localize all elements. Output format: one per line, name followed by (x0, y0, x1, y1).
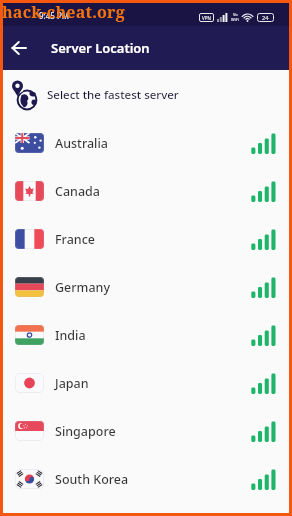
staticText: Australia (55, 135, 108, 152)
staticText: South Korea (55, 471, 129, 488)
staticText: Germany (55, 279, 110, 296)
button[interactable] (3, 26, 35, 70)
staticText: 24 (262, 14, 269, 21)
staticText: France (55, 231, 95, 248)
button[interactable]: India (3, 311, 289, 359)
staticText: Server Location (51, 39, 150, 57)
staticText: VPN (202, 15, 211, 21)
button[interactable]: Japan (3, 359, 289, 407)
button[interactable]: France (3, 215, 289, 263)
button[interactable]: Australia (3, 119, 289, 167)
staticText: Vo (233, 12, 238, 17)
staticText: Select the fastest server (47, 87, 179, 103)
staticText: Singapore (55, 423, 116, 440)
button[interactable]: South Korea (3, 455, 289, 503)
staticText: Japan (55, 375, 89, 392)
staticText: Canada (55, 183, 100, 200)
button[interactable]: Canada (3, 167, 289, 215)
staticText: hack-cheat.org (2, 1, 125, 23)
staticText: India (55, 327, 86, 344)
staticText: 9:45 PM (39, 10, 70, 21)
button[interactable]: Singapore (3, 407, 289, 455)
button[interactable]: Germany (3, 263, 289, 311)
staticText: WiFi (231, 17, 239, 22)
